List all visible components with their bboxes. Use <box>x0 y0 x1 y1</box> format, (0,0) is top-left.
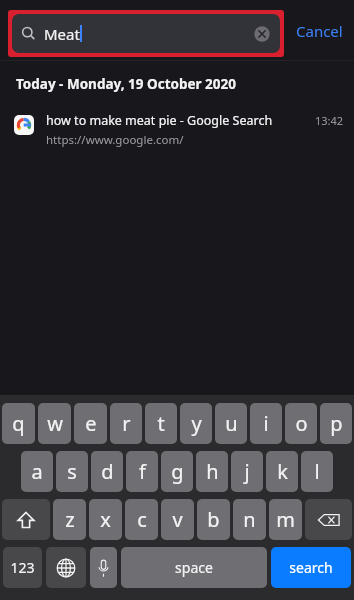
button[interactable]: l <box>301 451 333 492</box>
button[interactable]: Voice input <box>90 547 117 588</box>
button[interactable]: i <box>250 403 282 444</box>
staticText: 123 <box>10 558 35 577</box>
staticText: u <box>225 410 238 437</box>
staticText: k <box>277 458 288 485</box>
staticText: r <box>122 410 131 437</box>
staticText: h <box>206 458 219 485</box>
button[interactable]: g <box>161 451 193 492</box>
button[interactable]: o <box>285 403 317 444</box>
button[interactable]: v <box>161 499 194 540</box>
staticText: m <box>276 506 295 533</box>
staticText: g <box>171 458 184 485</box>
button[interactable]: search <box>271 547 351 588</box>
button[interactable]: x <box>89 499 122 540</box>
staticText: y <box>191 410 202 437</box>
button[interactable]: w <box>38 403 71 444</box>
button[interactable]: Shift <box>2 499 50 540</box>
button[interactable]: p <box>320 403 352 444</box>
staticText: s <box>67 458 77 485</box>
button[interactable]: m <box>269 499 302 540</box>
button[interactable]: y <box>180 403 212 444</box>
staticText: 13:42 <box>315 113 344 128</box>
button[interactable]: b <box>197 499 230 540</box>
button[interactable]: c <box>125 499 158 540</box>
staticText: n <box>243 506 256 533</box>
staticText: https://www.google.com/ <box>46 132 184 148</box>
staticText: Meat <box>44 24 80 44</box>
button[interactable]: Meat <box>12 14 280 53</box>
staticText: z <box>65 506 75 533</box>
staticText: how to make meat pie - Google Search <box>46 112 273 129</box>
button[interactable]: k <box>266 451 298 492</box>
staticText: i <box>263 410 269 437</box>
button[interactable]: 123 <box>3 547 42 588</box>
button[interactable]: u <box>215 403 247 444</box>
button[interactable]: h <box>196 451 228 492</box>
staticText: p <box>330 410 343 437</box>
staticText: f <box>139 458 146 485</box>
button[interactable]: r <box>110 403 142 444</box>
staticText: a <box>31 458 43 485</box>
button[interactable]: q <box>2 403 35 444</box>
button[interactable]: t <box>145 403 177 444</box>
button[interactable]: e <box>74 403 107 444</box>
staticText: search <box>289 558 333 577</box>
staticText: c <box>137 506 147 533</box>
staticText: o <box>295 410 308 437</box>
staticText: w <box>47 410 63 437</box>
staticText: space <box>175 558 213 577</box>
staticText: j <box>244 458 250 485</box>
button[interactable]: n <box>233 499 266 540</box>
staticText: v <box>172 506 183 533</box>
staticText: l <box>314 458 320 485</box>
staticText: Cancel <box>296 21 343 41</box>
staticText: t <box>157 410 165 437</box>
button[interactable]: space <box>121 547 267 588</box>
staticText: b <box>207 506 220 533</box>
button[interactable]: z <box>53 499 86 540</box>
staticText: q <box>12 410 25 437</box>
button[interactable]: how to make meat pie - Google Search <box>0 110 354 150</box>
button[interactable]: j <box>231 451 263 492</box>
button[interactable]: a <box>21 451 53 492</box>
staticText: e <box>85 410 97 437</box>
staticText: Today - Monday, 19 October 2020 <box>16 75 236 93</box>
staticText: d <box>101 458 114 485</box>
button[interactable]: Change keyboard language <box>46 547 86 588</box>
button[interactable]: Cancel <box>284 7 354 54</box>
button[interactable]: Backspace <box>305 499 352 540</box>
staticText: x <box>100 506 111 533</box>
button[interactable]: s <box>56 451 88 492</box>
button[interactable]: d <box>91 451 123 492</box>
button[interactable]: Clear search <box>253 25 271 43</box>
button[interactable]: f <box>126 451 158 492</box>
